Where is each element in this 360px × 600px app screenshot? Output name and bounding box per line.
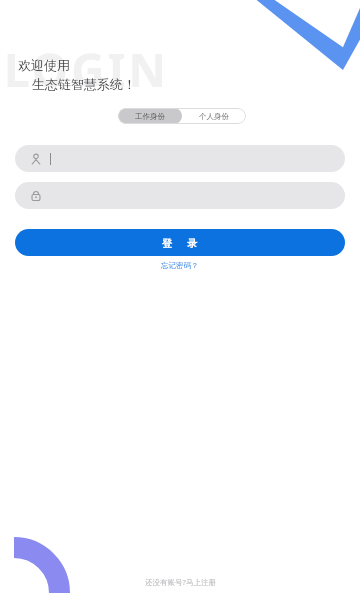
staticText: 忘记密码？ xyxy=(161,261,199,270)
button[interactable]: 个人身份 xyxy=(182,108,246,124)
button[interactable]: Password xyxy=(15,182,345,209)
staticText: 登 录 xyxy=(162,236,199,250)
staticText: LOGIN xyxy=(4,38,169,101)
button[interactable]: 忘记密码？ xyxy=(157,259,203,272)
staticText: 还没有账号?马上注册 xyxy=(145,577,216,587)
staticText: 欢迎使用 xyxy=(18,57,70,73)
button[interactable]: 还没有账号?马上注册 xyxy=(139,575,222,589)
button[interactable]: 工作身份 xyxy=(118,108,182,124)
staticText: 生态链智慧系统！ xyxy=(32,76,136,92)
staticText: 工作身份 xyxy=(135,112,165,121)
staticText: 个人身份 xyxy=(199,112,229,121)
button[interactable]: 登 录 xyxy=(15,229,345,256)
button[interactable]: Username xyxy=(15,145,345,172)
